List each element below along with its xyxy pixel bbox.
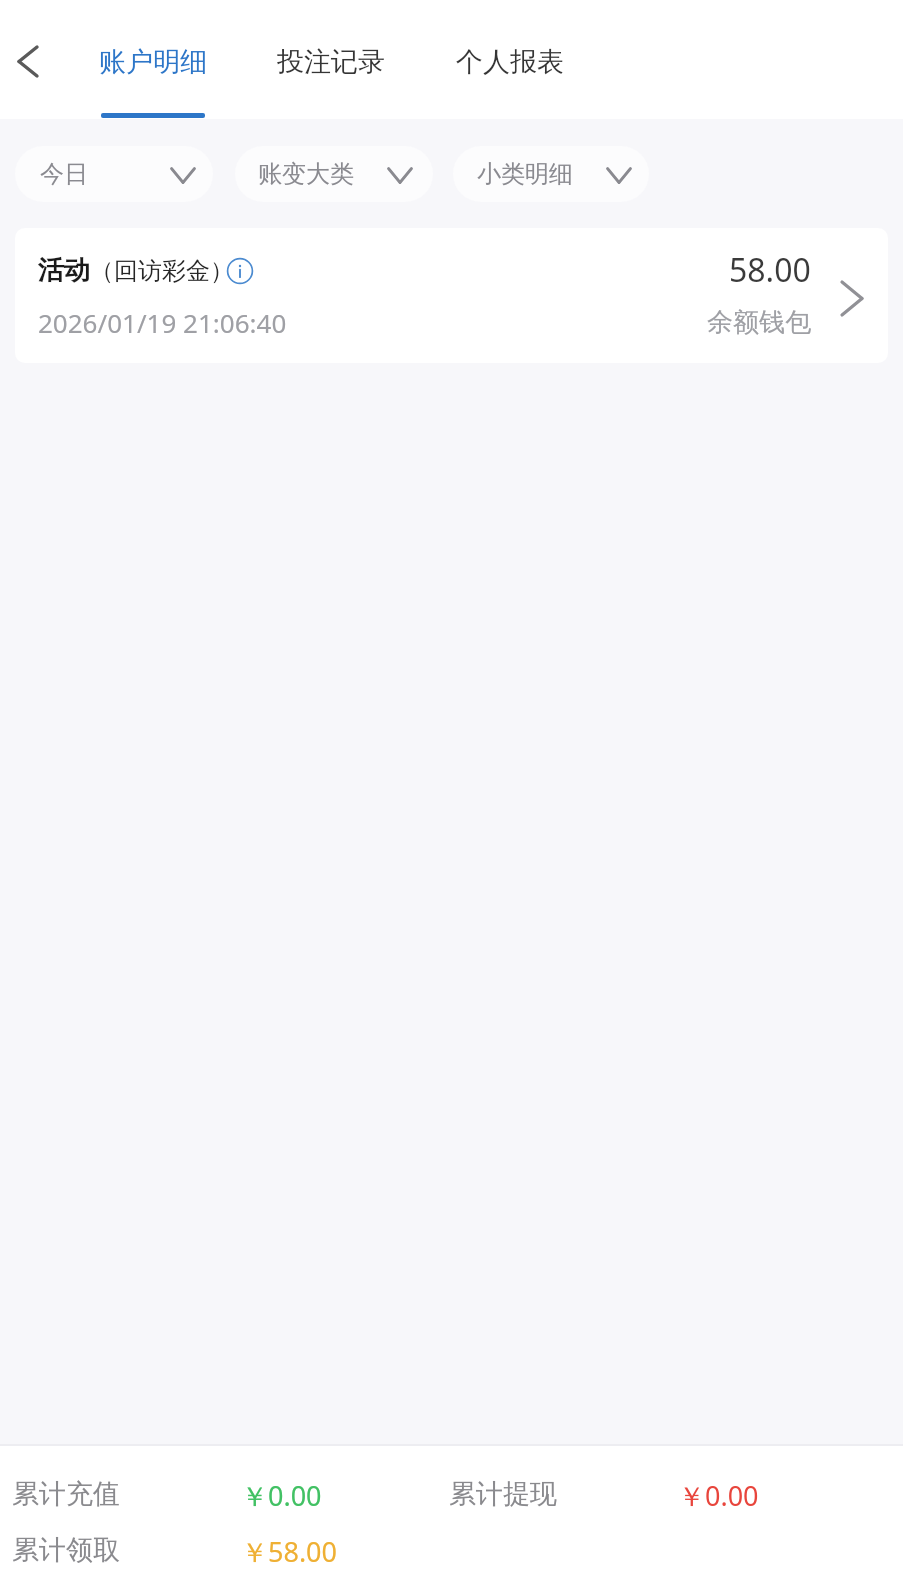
staticText: （回访彩金） xyxy=(90,256,234,286)
staticText: 累计提现 xyxy=(449,1477,557,1511)
staticText: 活动 xyxy=(38,254,90,287)
staticText: 账户明细 xyxy=(99,45,207,79)
staticText: 58.00 xyxy=(729,248,811,292)
staticText: 2026/01/19 21:06:40 xyxy=(38,305,287,340)
staticText: 投注记录 xyxy=(277,45,385,79)
staticText: ￥0.00 xyxy=(678,1477,759,1514)
staticText: 余额钱包 xyxy=(707,306,811,339)
staticText: 小类明细 xyxy=(477,159,573,189)
staticText: ￥0.00 xyxy=(241,1477,322,1514)
button[interactable]: 活动 xyxy=(15,228,888,363)
button[interactable]: 账变大类 xyxy=(235,146,433,202)
staticText: 账变大类 xyxy=(258,159,354,189)
staticText: 累计领取 xyxy=(12,1533,120,1567)
staticText: ￥58.00 xyxy=(241,1533,338,1570)
staticText: 个人报表 xyxy=(456,45,564,79)
staticText: 累计充值 xyxy=(12,1477,120,1511)
button[interactable]: 投注记录 xyxy=(263,0,399,119)
button[interactable]: Info xyxy=(226,257,254,285)
button[interactable]: 今日 xyxy=(15,146,213,202)
button[interactable]: 个人报表 xyxy=(442,0,578,119)
button[interactable]: 小类明细 xyxy=(453,146,649,202)
button[interactable]: 账户明细 xyxy=(85,0,221,119)
button[interactable]: Back xyxy=(0,6,56,114)
staticText: 今日 xyxy=(40,159,88,189)
